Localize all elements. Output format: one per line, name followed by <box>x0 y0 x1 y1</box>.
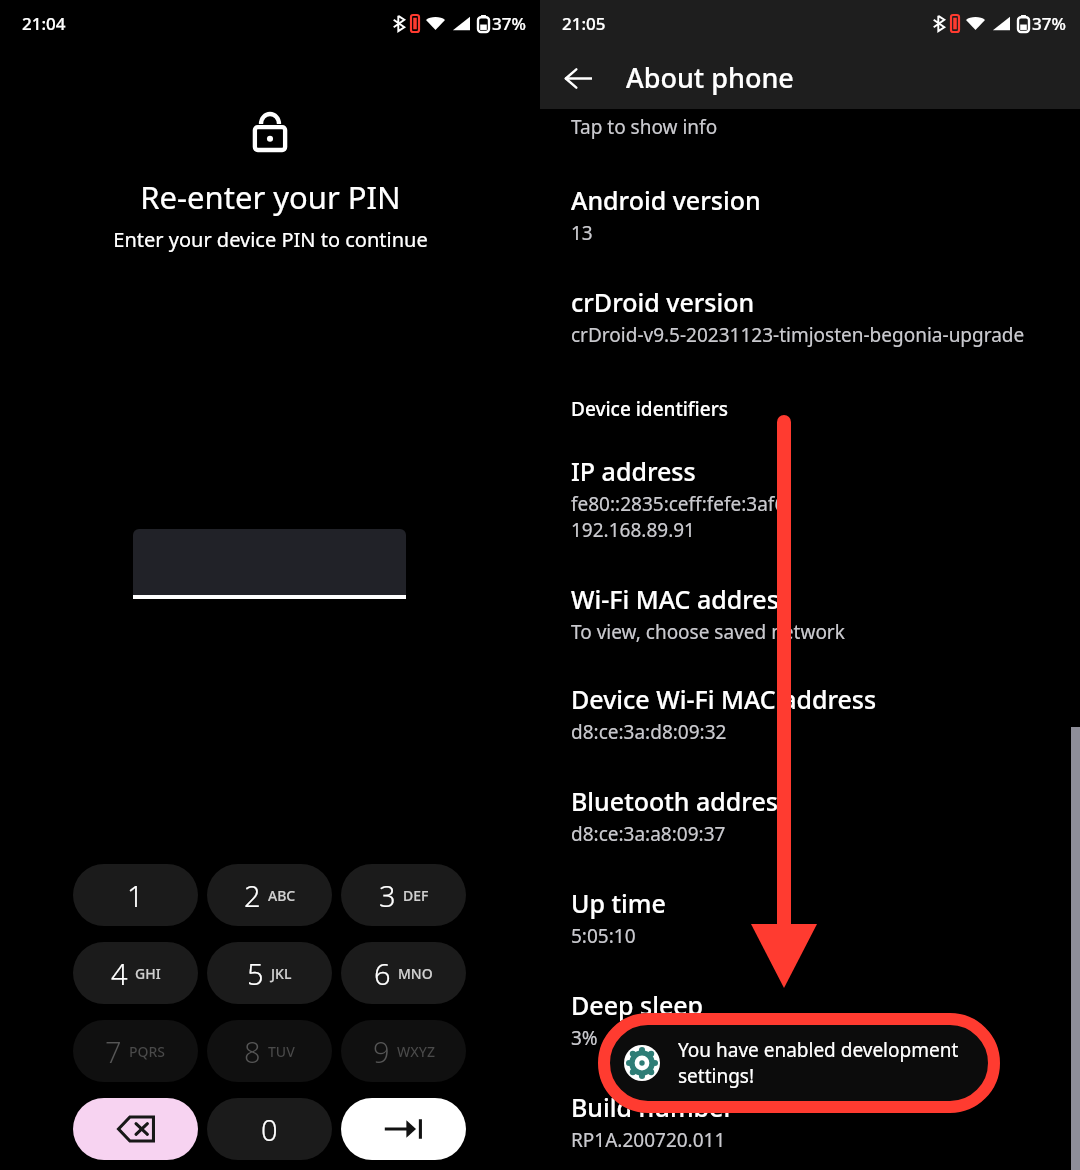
staticText: WXYZ <box>397 1042 435 1061</box>
button[interactable]: Up time <box>571 886 1049 949</box>
button[interactable]: 7 <box>73 1020 198 1082</box>
other: Locked <box>252 112 288 152</box>
staticText: d8:ce:3a:d8:09:32 <box>571 719 727 745</box>
staticText: 0 <box>261 1110 278 1149</box>
staticText: TUV <box>268 1042 295 1061</box>
staticText: Enter your device PIN to continue <box>113 226 428 253</box>
button[interactable]: 4 <box>73 942 198 1004</box>
staticText: RP1A.200720.011 <box>571 1127 726 1153</box>
button[interactable]: Enter <box>341 1098 466 1160</box>
button[interactable]: Build number <box>571 1090 1049 1153</box>
staticText: GHI <box>135 964 161 983</box>
button[interactable]: Back <box>552 52 604 104</box>
staticText: Up time <box>571 886 666 920</box>
button[interactable]: 5 <box>207 942 332 1004</box>
staticText: To view, choose saved network <box>571 619 845 645</box>
staticText: 6 <box>374 954 391 993</box>
button[interactable]: Backspace <box>73 1098 198 1160</box>
staticText: 7 <box>105 1032 122 1071</box>
staticText: Android version <box>571 183 761 217</box>
staticText: Build number <box>571 1090 734 1124</box>
button[interactable]: Device identifiers <box>571 396 728 422</box>
button[interactable]: 2 <box>207 864 332 926</box>
staticText: 4 <box>111 954 128 993</box>
staticText: 5:05:10 <box>571 923 636 949</box>
button[interactable]: crDroid version <box>571 285 1049 348</box>
button[interactable]: 8 <box>207 1020 332 1082</box>
staticText: Wi-Fi MAC address <box>571 582 791 616</box>
button[interactable]: IP address <box>571 454 1049 543</box>
staticText: You have enabled development settings! <box>678 1037 978 1089</box>
staticText: d8:ce:3a:a8:09:37 <box>571 821 726 847</box>
staticText: Deep sleep <box>571 988 704 1022</box>
staticText: 37% <box>492 12 526 35</box>
button[interactable]: Bluetooth address <box>571 784 1049 847</box>
staticText: 9 <box>373 1032 390 1071</box>
staticText: 3 <box>379 876 396 915</box>
button[interactable]: Wi-Fi MAC address <box>571 582 1049 645</box>
staticText: 37% <box>1032 12 1066 35</box>
button[interactable]: Device Wi-Fi MAC address <box>571 682 1049 745</box>
staticText: crDroid version <box>571 285 755 319</box>
staticText: crDroid-v9.5-20231123-timjosten-begonia-… <box>571 322 1025 348</box>
button[interactable]: Tap to show info <box>571 114 718 140</box>
staticText: 21:04 <box>22 12 66 35</box>
button[interactable]: Android version <box>571 183 1049 246</box>
staticText: MNO <box>398 964 433 983</box>
staticText: 1 <box>127 876 144 915</box>
button[interactable] <box>598 1013 1000 1113</box>
staticText: 5 <box>247 954 264 993</box>
button[interactable]: 3 <box>341 864 466 926</box>
staticText: ABC <box>268 886 296 905</box>
staticText: PQRS <box>129 1042 166 1061</box>
button[interactable]: 6 <box>341 942 466 1004</box>
staticText: 8 <box>244 1032 261 1071</box>
staticText: DEF <box>403 886 429 905</box>
button[interactable]: Deep sleep <box>571 988 1049 1051</box>
button[interactable]: 0 <box>207 1098 332 1160</box>
staticText: 3% <box>571 1025 598 1051</box>
staticText: 192.168.89.91 <box>571 517 695 543</box>
staticText: About phone <box>626 59 794 96</box>
staticText: fe80::2835:ceff:fefe:3af6 <box>571 491 786 517</box>
staticText: Bluetooth address <box>571 784 791 818</box>
staticText: 2 <box>244 876 261 915</box>
staticText: Re-enter your PIN <box>140 176 401 218</box>
staticText: 21:05 <box>562 12 606 35</box>
staticText: Device Wi-Fi MAC address <box>571 682 877 716</box>
staticText: 13 <box>571 220 593 246</box>
button[interactable]: 9 <box>341 1020 466 1082</box>
staticText: JKL <box>271 964 292 983</box>
staticText: IP address <box>571 454 696 488</box>
button[interactable]: 1 <box>73 864 198 926</box>
